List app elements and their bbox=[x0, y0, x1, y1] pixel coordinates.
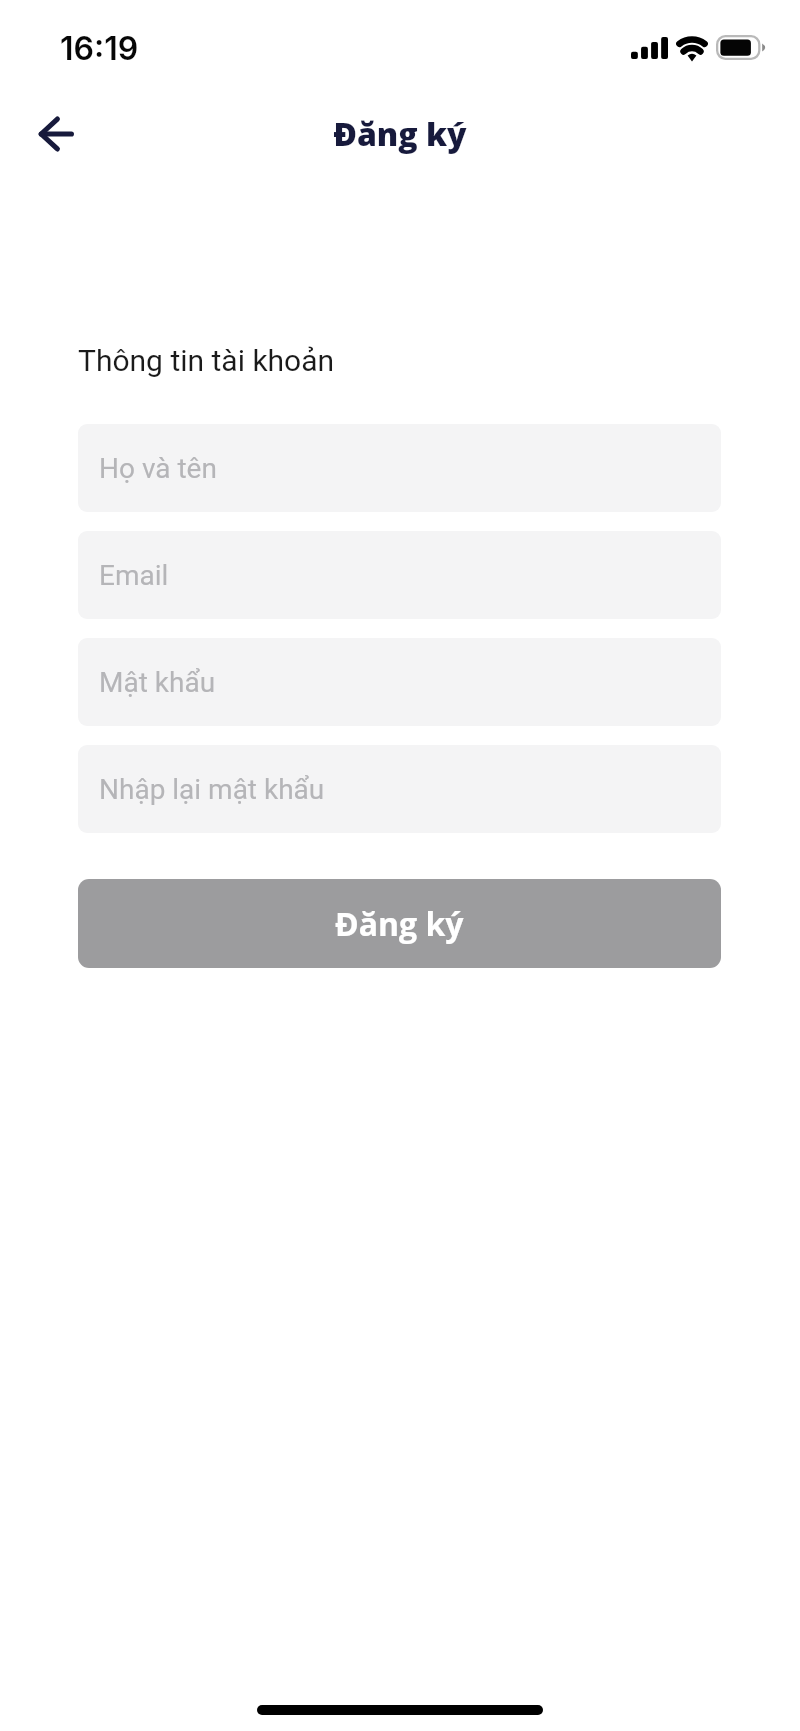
staticText: Nhập lại mật khẩu bbox=[99, 773, 325, 806]
button[interactable]: Đăng ký bbox=[78, 879, 721, 968]
staticText: Thông tin tài khoản bbox=[78, 343, 335, 378]
staticText: 16:19 bbox=[60, 29, 139, 68]
staticText: Đăng ký bbox=[335, 902, 464, 946]
button[interactable]: Back bbox=[23, 101, 89, 167]
staticText: Mật khẩu bbox=[99, 666, 216, 699]
staticText: Họ và tên bbox=[99, 452, 217, 485]
button[interactable]: Mật khẩu bbox=[78, 638, 721, 726]
button[interactable]: Họ và tên bbox=[78, 424, 721, 512]
staticText: Đăng ký bbox=[333, 112, 467, 156]
button[interactable]: Nhập lại mật khẩu bbox=[78, 745, 721, 833]
button[interactable]: Email bbox=[78, 531, 721, 619]
staticText: Email bbox=[99, 559, 169, 592]
